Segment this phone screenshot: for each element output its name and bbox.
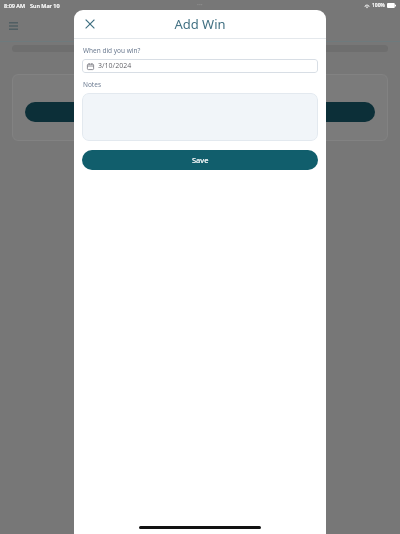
staticText: 8:09 AM	[4, 2, 26, 9]
button[interactable]: Save	[82, 150, 318, 170]
staticText: Notes	[83, 80, 101, 89]
staticText: 100%	[372, 2, 385, 9]
staticText: 3/10/2024	[98, 61, 132, 71]
button[interactable]	[82, 93, 318, 141]
button[interactable]: Menu	[6, 19, 20, 33]
staticText: Save	[192, 155, 209, 165]
staticText: When did you win?	[83, 46, 141, 55]
staticText: Sun Mar 10	[30, 2, 60, 9]
staticText: Add Win	[174, 15, 226, 33]
button[interactable]: Close	[78, 12, 102, 36]
button[interactable]: 3/10/2024	[82, 59, 318, 73]
staticText: •••	[197, 2, 203, 9]
